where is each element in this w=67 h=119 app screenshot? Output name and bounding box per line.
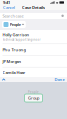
staticText: Search case [2,13,23,19]
staticText: Group [28,95,39,101]
button[interactable]: JP Morgan [0,56,67,67]
staticText: 9:41 [3,0,10,5]
staticText: Camila Hoar [2,70,25,75]
staticText: People [28,90,39,94]
staticText: JP Morgan [2,59,21,64]
button[interactable]: Done [52,77,67,82]
button[interactable]: Cancel [0,5,18,10]
staticText: Cancel [3,5,15,10]
staticText: Technical Support Engineer [2,38,40,41]
button[interactable]: Collapse [0,77,8,82]
button[interactable]: People [2,21,26,28]
staticText: Phu Truong [2,47,25,52]
staticText: People [10,22,21,27]
staticText: Case Details [22,5,45,10]
staticText: Holly Garrison [2,32,29,37]
button[interactable]: Camila Hoar [0,67,67,77]
button[interactable]: Group [24,94,42,102]
button[interactable]: Search case [0,13,67,19]
button[interactable]: Phu Truong [0,44,67,56]
staticText: Done [54,77,64,82]
button[interactable]: Holly Garrison [0,30,67,44]
